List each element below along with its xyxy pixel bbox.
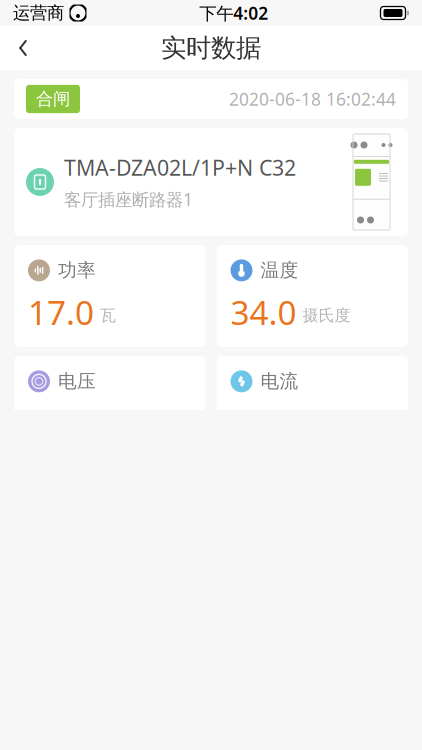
staticText: 瓦 <box>100 306 116 325</box>
button[interactable]: 返回 <box>0 26 46 70</box>
staticText: TMA-DZA02L/1P+N C32 <box>64 153 296 182</box>
staticText: 下午4:02 <box>199 1 268 24</box>
button[interactable]: 温度 <box>216 245 408 347</box>
staticText: 11.0 <box>230 401 296 445</box>
button[interactable]: TMA-DZA02L/1P+N C32 <box>14 128 408 236</box>
staticText: 17.0 <box>28 290 94 334</box>
staticText: 摄氏度 <box>302 306 350 325</box>
button[interactable]: 功率 <box>14 245 205 347</box>
staticText: 2020-06-18 16:02:44 <box>229 87 396 110</box>
staticText: 运营商 <box>13 2 64 24</box>
staticText: 221 <box>28 401 85 445</box>
staticText: 34.0 <box>230 290 296 334</box>
staticText: 电流 <box>260 370 298 393</box>
staticText: 客厅插座断路器1 <box>64 188 193 211</box>
staticText: 温度 <box>260 259 298 282</box>
staticText: 电压 <box>58 370 96 393</box>
button[interactable]: 电压 <box>14 356 205 458</box>
staticText: 实时数据 <box>161 32 261 63</box>
staticText: 合闸 <box>36 88 70 110</box>
button[interactable]: 电流 <box>216 356 408 458</box>
staticText: 功率 <box>58 259 96 282</box>
